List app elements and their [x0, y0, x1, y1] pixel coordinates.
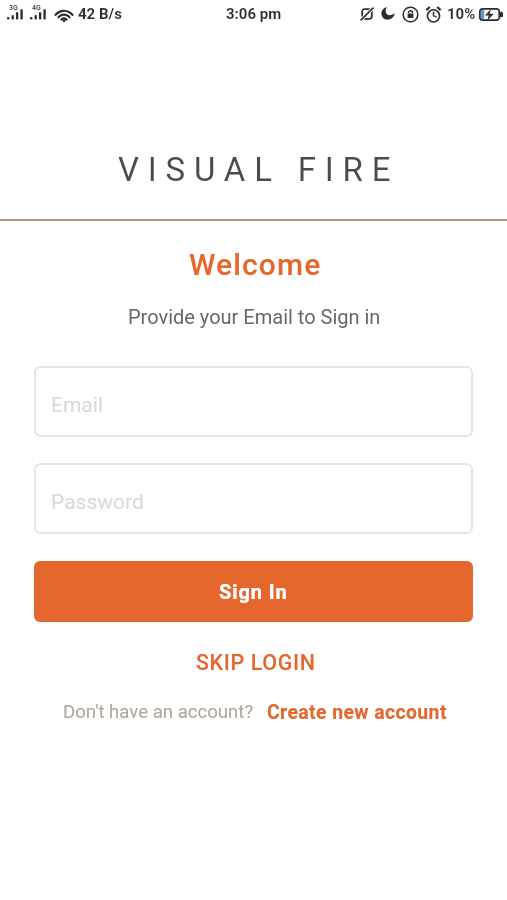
staticText: Password	[51, 490, 144, 515]
staticText: Provide your Email to Sign in	[128, 305, 381, 328]
button[interactable]: SKIP LOGIN	[182, 644, 330, 680]
staticText: Welcome	[189, 247, 322, 282]
staticText: Email	[51, 393, 103, 418]
staticText: Don't have an account?	[63, 701, 254, 723]
other: Rotation locked	[402, 6, 419, 23]
other: Silent mode	[359, 6, 375, 22]
staticText: 4G	[32, 4, 41, 12]
button[interactable]: Email	[34, 366, 473, 437]
staticText: Create new account	[267, 701, 447, 724]
staticText: SKIP LOGIN	[196, 650, 316, 674]
button[interactable]: Create new account	[267, 697, 447, 727]
other: Alarm set	[425, 6, 442, 23]
button[interactable]: Sign In	[34, 561, 473, 622]
button[interactable]: Password	[34, 463, 473, 534]
staticText: 10%	[447, 5, 476, 23]
staticText: 3G	[9, 4, 18, 12]
staticText: VISUAL FIRE	[118, 150, 400, 189]
other: Do not disturb	[380, 6, 396, 22]
other: Battery charging 10 percent	[479, 8, 503, 21]
staticText: Sign In	[219, 580, 288, 603]
staticText: 42 B/s	[78, 5, 122, 23]
staticText: 3:06 pm	[226, 5, 282, 23]
